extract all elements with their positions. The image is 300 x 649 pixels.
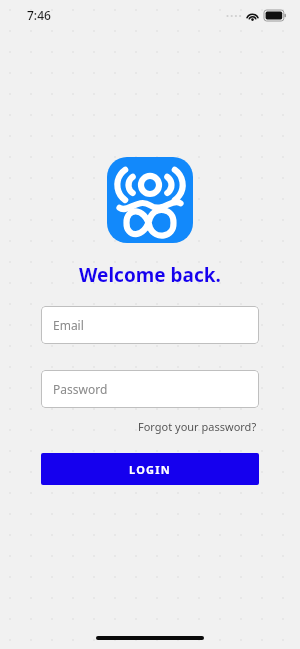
staticText: 7:46 (27, 7, 51, 23)
button[interactable]: Password (41, 370, 259, 408)
staticText: LOGIN (129, 462, 171, 477)
staticText: Email (53, 317, 84, 333)
button[interactable]: LOGIN (41, 453, 259, 485)
button[interactable]: Forgot your password? (136, 417, 259, 436)
staticText: Password (53, 381, 108, 397)
staticText: Welcome back. (79, 262, 221, 288)
button[interactable]: Email (41, 306, 259, 344)
staticText: Forgot your password? (138, 419, 257, 434)
